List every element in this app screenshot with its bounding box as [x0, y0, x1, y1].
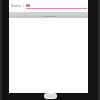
button[interactable]: CALCULATE [9, 12, 88, 18]
staticText: Number 1 [11, 4, 26, 8]
button[interactable]: Home [44, 93, 57, 99]
staticText: CALCULATE [42, 14, 56, 17]
button[interactable]: Number 1 [9, 3, 88, 9]
